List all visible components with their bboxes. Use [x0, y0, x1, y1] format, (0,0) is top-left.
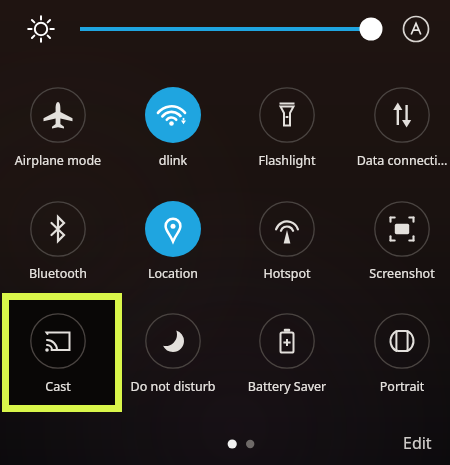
button[interactable] [231, 197, 343, 275]
button[interactable]: Edit [403, 432, 432, 454]
staticText: dlink [111, 152, 235, 169]
button[interactable] [346, 309, 450, 387]
staticText: Hotspot [225, 265, 349, 282]
button[interactable] [2, 83, 114, 161]
staticText: Screenshot [340, 265, 450, 282]
staticText: Portrait [340, 378, 450, 395]
staticText: Flashlight [225, 152, 349, 169]
staticText: Data connecti… [340, 152, 450, 169]
button[interactable] [117, 197, 229, 275]
staticText: Battery Saver [225, 378, 349, 395]
button[interactable] [2, 309, 114, 387]
button[interactable] [346, 197, 450, 275]
button[interactable] [231, 309, 343, 387]
button[interactable] [346, 83, 450, 161]
button[interactable] [117, 309, 229, 387]
button[interactable]: Auto brightness [396, 9, 436, 49]
button[interactable] [231, 83, 343, 161]
staticText: Do not disturb [111, 378, 235, 395]
button[interactable] [2, 197, 114, 275]
button[interactable]: Brightness [20, 8, 62, 50]
staticText: Edit [403, 432, 432, 454]
staticText: Bluetooth [0, 265, 120, 282]
staticText: Airplane mode [0, 152, 120, 169]
button[interactable]: Brightness slider [78, 8, 383, 50]
button[interactable] [117, 83, 229, 161]
staticText: Location [111, 265, 235, 282]
button[interactable] [9, 300, 115, 405]
staticText: Cast [0, 378, 120, 395]
